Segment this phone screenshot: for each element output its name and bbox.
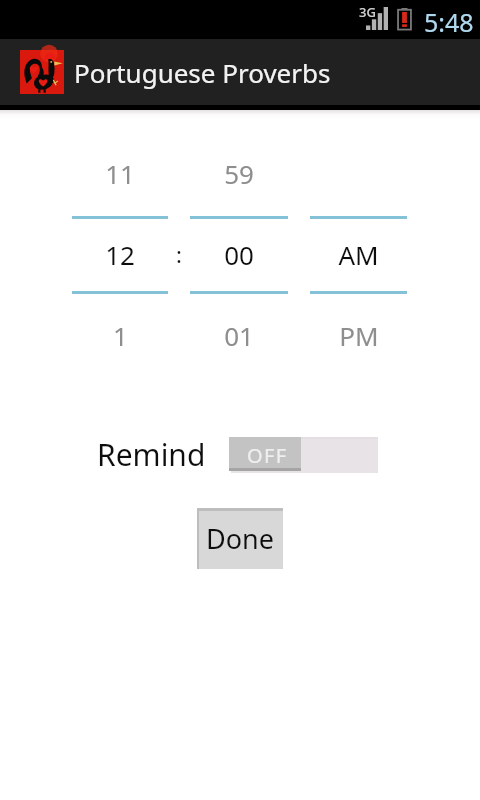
button[interactable]: AM	[310, 217, 407, 291]
button[interactable]: 11	[72, 136, 168, 210]
staticText: 1	[113, 318, 128, 353]
staticText: OFF	[247, 442, 288, 469]
button[interactable]: Remind toggle	[229, 436, 378, 474]
button[interactable]: 00	[190, 217, 288, 291]
button[interactable]: 01	[190, 298, 288, 372]
staticText: 59	[224, 156, 254, 191]
staticText: Remind	[97, 434, 206, 475]
button[interactable]: PM	[310, 298, 407, 372]
staticText: AM	[338, 237, 379, 272]
staticText: PM	[339, 318, 379, 353]
button[interactable]: 1	[72, 298, 168, 372]
staticText: 01	[224, 318, 254, 353]
button[interactable]: Portuguese Proverbs	[20, 39, 331, 105]
staticText: Portuguese Proverbs	[74, 55, 331, 90]
button[interactable]: 12	[72, 217, 168, 291]
staticText: :	[176, 239, 182, 269]
button[interactable]: Done	[197, 508, 283, 569]
button[interactable]: 59	[190, 136, 288, 210]
staticText: 11	[105, 156, 135, 191]
staticText: 12	[105, 237, 135, 272]
staticText: 3G	[359, 3, 376, 21]
staticText: 00	[224, 237, 254, 272]
staticText: Done	[206, 520, 274, 557]
staticText: 5:48	[424, 5, 474, 39]
